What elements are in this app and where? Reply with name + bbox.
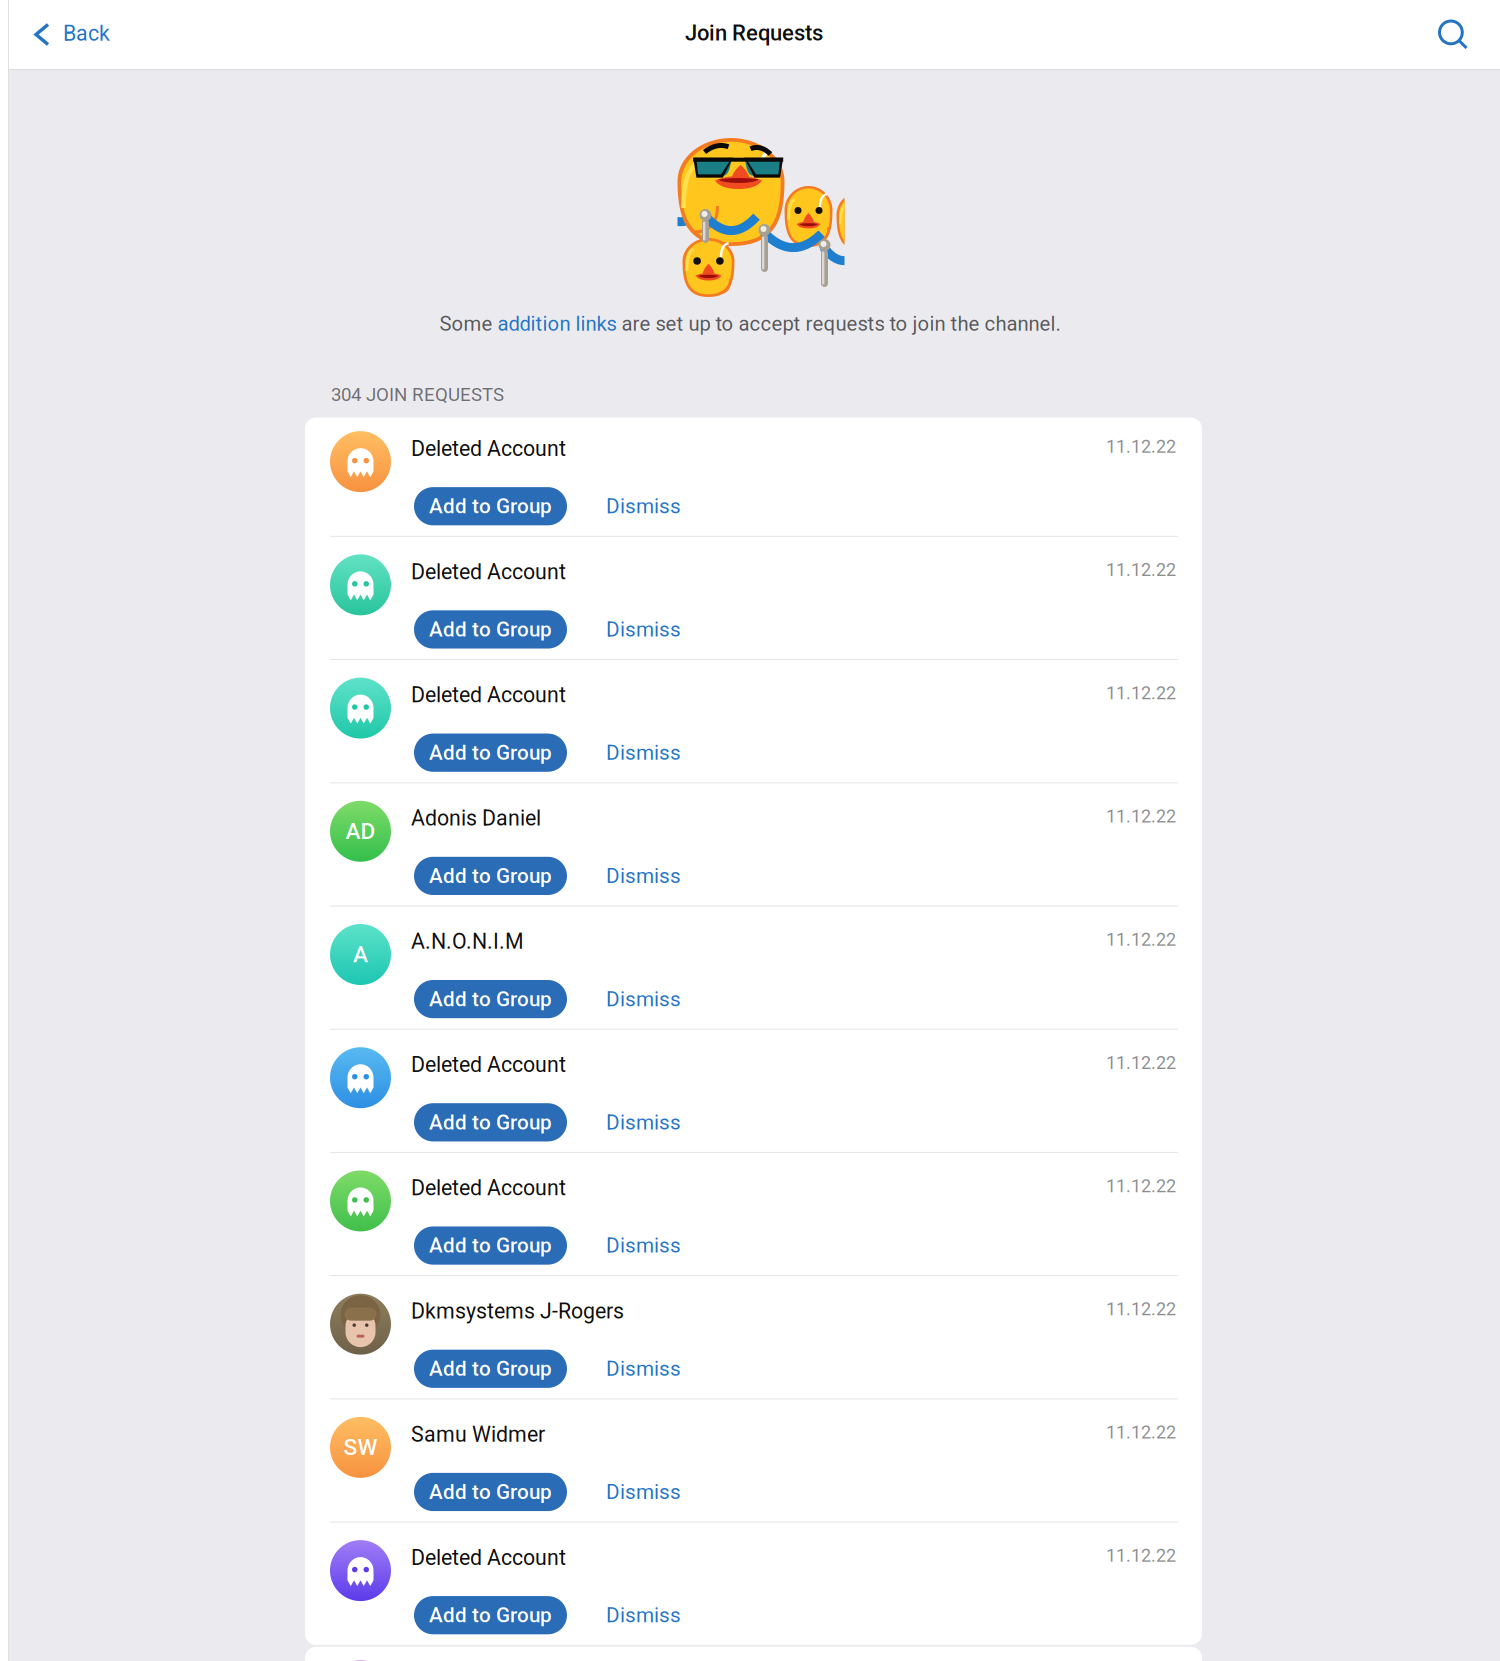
button[interactable]: Dismiss (567, 856, 703, 896)
staticText: Dismiss (606, 617, 681, 641)
staticText: Deleted Account (411, 1175, 566, 1200)
button[interactable]: Search (1418, 5, 1500, 63)
button[interactable]: Add to Group (414, 1103, 567, 1141)
button[interactable]: Add to Group (414, 1226, 567, 1265)
staticText: 11.12.22 (1106, 806, 1176, 827)
staticText: A (353, 941, 368, 968)
button[interactable]: Add to Group (414, 857, 567, 895)
staticText: 11.12.22 (1106, 436, 1176, 457)
staticText: Dismiss (606, 1233, 681, 1258)
button[interactable]: Dismiss (567, 733, 703, 773)
button[interactable]: Add to Group (414, 1596, 567, 1634)
staticText: are set up to accept requests to join th… (616, 312, 1060, 336)
staticText: SW (343, 1434, 377, 1461)
staticText: Add to Group (429, 1480, 552, 1504)
staticText: Dismiss (606, 1603, 681, 1627)
staticText: Add to Group (429, 741, 552, 765)
button[interactable]: Dismiss (567, 609, 703, 649)
staticText: Add to Group (429, 1233, 552, 1258)
button[interactable]: Dismiss (567, 1349, 703, 1389)
staticText: Adonis Daniel (411, 806, 541, 831)
staticText: 11.12.22 (1106, 559, 1176, 580)
button[interactable]: Dismiss (567, 1472, 703, 1512)
button[interactable]: Add to Group (414, 1350, 567, 1388)
staticText: 11.12.22 (1106, 1545, 1176, 1566)
button[interactable]: Dismiss (567, 979, 703, 1019)
staticText: Add to Group (429, 1357, 552, 1381)
staticText: Join Requests (685, 20, 823, 46)
staticText: Deleted Account (411, 436, 566, 461)
staticText: Dismiss (606, 1480, 681, 1504)
staticText: Back (63, 21, 110, 46)
staticText: Some (439, 312, 497, 336)
staticText: Deleted Account (411, 1545, 566, 1570)
staticText: 11.12.22 (1106, 683, 1176, 704)
staticText: Deleted Account (411, 1052, 566, 1077)
staticText: Add to Group (429, 494, 552, 518)
staticText: 304 JOIN REQUESTS (331, 384, 504, 406)
staticText: Add to Group (429, 1603, 552, 1627)
staticText: 11.12.22 (1106, 1422, 1176, 1443)
staticText: Deleted Account (411, 559, 566, 584)
staticText: Dismiss (606, 741, 681, 765)
staticText: A.N.O.N.I.M (411, 929, 524, 954)
staticText: Add to Group (429, 1110, 552, 1134)
staticText: 11.12.22 (1106, 1299, 1176, 1320)
staticText: Dismiss (606, 1357, 681, 1381)
staticText: Add to Group (429, 987, 552, 1011)
staticText: 11.12.22 (1106, 929, 1176, 950)
staticText: Samu Widmer (411, 1422, 545, 1447)
staticText: Dismiss (606, 1110, 681, 1134)
button[interactable]: Dismiss (567, 1102, 703, 1142)
staticText: 11.12.22 (1106, 1052, 1176, 1073)
staticText: Dismiss (606, 987, 681, 1011)
button[interactable]: Dismiss (567, 1225, 703, 1266)
button[interactable]: Back (0, 8, 130, 61)
button[interactable]: Dismiss (567, 486, 703, 526)
staticText: Deleted Account (411, 683, 566, 708)
staticText: Dismiss (606, 494, 681, 518)
staticText: Add to Group (429, 617, 552, 641)
staticText: addition links (497, 312, 616, 336)
button[interactable]: Add to Group (414, 980, 567, 1018)
staticText: 11.12.22 (1106, 1175, 1176, 1196)
staticText: AD (345, 818, 375, 845)
button[interactable]: Add to Group (414, 487, 567, 525)
button[interactable]: Add to Group (414, 1473, 567, 1511)
button[interactable]: Dismiss (567, 1595, 703, 1635)
staticText: Add to Group (429, 864, 552, 888)
staticText: Dkmsystems J-Rogers (411, 1299, 624, 1324)
button[interactable]: Add to Group (414, 734, 567, 772)
staticText: Dismiss (606, 864, 681, 888)
button[interactable]: Add to Group (414, 610, 567, 648)
